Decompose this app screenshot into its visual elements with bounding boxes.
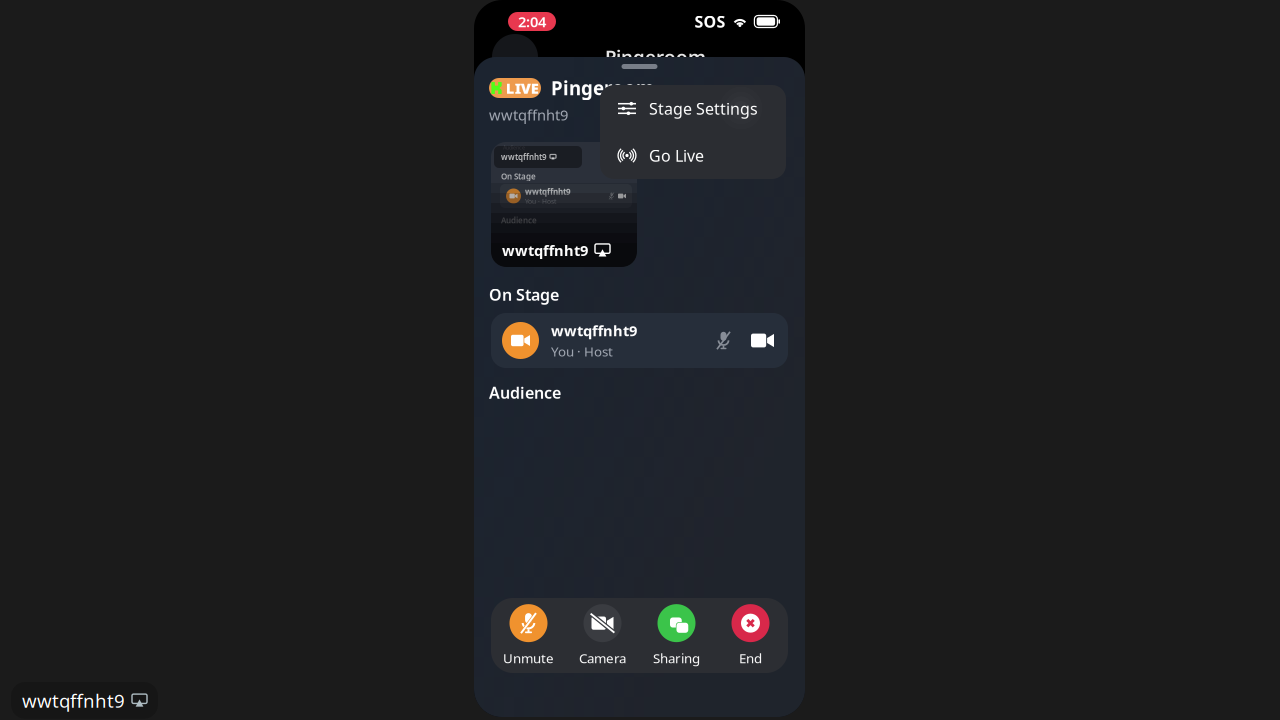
staticText: wwtqffnht9: [489, 105, 568, 124]
staticText: 2:04: [518, 12, 546, 31]
staticText: You · Host: [525, 197, 556, 206]
staticText: End: [739, 649, 762, 667]
staticText: SOS: [694, 11, 725, 32]
staticText: Sharing: [653, 649, 700, 667]
button[interactable]: Unmute: [491, 598, 565, 673]
button[interactable]: wwtqffnht9: [491, 313, 788, 368]
staticText: wwtqffnht9: [22, 688, 125, 713]
button[interactable]: Go Live: [600, 132, 786, 179]
staticText: Unmute: [503, 649, 554, 667]
staticText: Audience: [489, 382, 561, 403]
staticText: wwtqffnht9: [502, 240, 588, 260]
button[interactable]: Sharing: [639, 598, 713, 673]
staticText: Pingeroom: [605, 44, 706, 69]
staticText: Camera: [579, 649, 626, 667]
staticText: You · Host: [551, 342, 613, 360]
staticText: Go Live: [649, 145, 704, 166]
staticText: On Stage: [501, 171, 536, 182]
staticText: Audience: [503, 144, 525, 151]
staticText: Audience: [501, 215, 537, 226]
staticText: Stage Settings: [649, 98, 758, 119]
staticText: wwtqffnht9: [501, 152, 547, 162]
button[interactable]: Camera: [565, 598, 639, 673]
staticText: wwtqffnht9: [551, 321, 637, 340]
staticText: wwtqffnht9: [525, 186, 571, 197]
button[interactable]: Stage Settings: [600, 85, 786, 132]
button[interactable]: End: [713, 598, 787, 673]
staticText: On Stage: [489, 284, 559, 305]
staticText: Pingeroom: [551, 76, 654, 100]
staticText: LIVE: [506, 78, 539, 98]
